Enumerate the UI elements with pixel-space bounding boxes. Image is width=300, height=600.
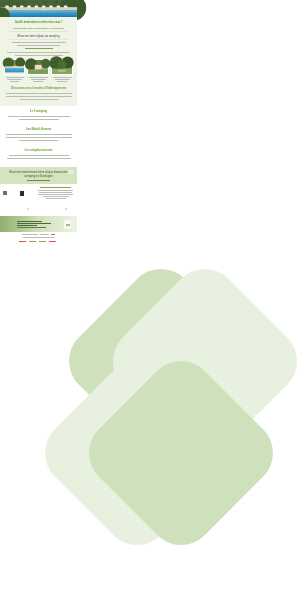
staticText: Le Camping: [5, 109, 72, 113]
staticText: Destination votre reservation en Dordogn…: [4, 26, 73, 29]
button[interactable]: [51, 59, 73, 82]
staticText: Quelle destination recherchez-vous ?: [4, 20, 73, 24]
staticText: Réservez maintenant votre séjour dans no…: [4, 170, 73, 178]
button[interactable]: [27, 59, 49, 82]
button[interactable]: Logo: [64, 220, 71, 229]
staticText: Les Mobil-Homes: [5, 127, 72, 131]
staticText: Les emplacements: [5, 148, 72, 152]
staticText: Découvrez nos 3 modes d'hébergement: [4, 86, 73, 90]
button[interactable]: Réservez maintenant votre séjour dans no…: [0, 167, 77, 184]
button[interactable]: [4, 59, 25, 82]
staticText: Réservez votre séjour au camping: [4, 34, 73, 37]
